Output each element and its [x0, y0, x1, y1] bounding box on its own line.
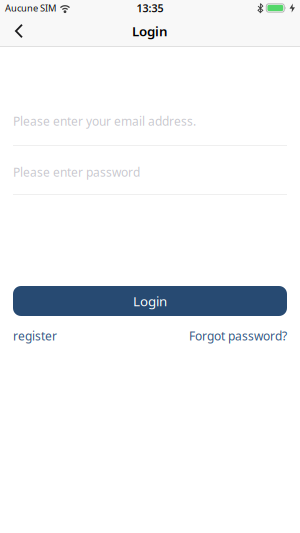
button[interactable]: register [13, 328, 57, 344]
staticText: Login [132, 22, 168, 40]
button[interactable]: Please enter password [0, 162, 300, 195]
staticText: Aucune SIM [5, 2, 56, 14]
staticText: Please enter your email address. [13, 113, 196, 129]
button[interactable]: Please enter your email address. [0, 111, 300, 146]
staticText: Forgot password? [189, 328, 287, 344]
button[interactable] [0, 16, 35, 46]
staticText: Please enter password [13, 164, 140, 180]
staticText: 13:35 [136, 1, 163, 15]
staticText: Login [133, 292, 167, 310]
button[interactable]: Login [13, 286, 287, 316]
staticText: register [13, 328, 57, 344]
button[interactable]: Forgot password? [189, 328, 287, 344]
